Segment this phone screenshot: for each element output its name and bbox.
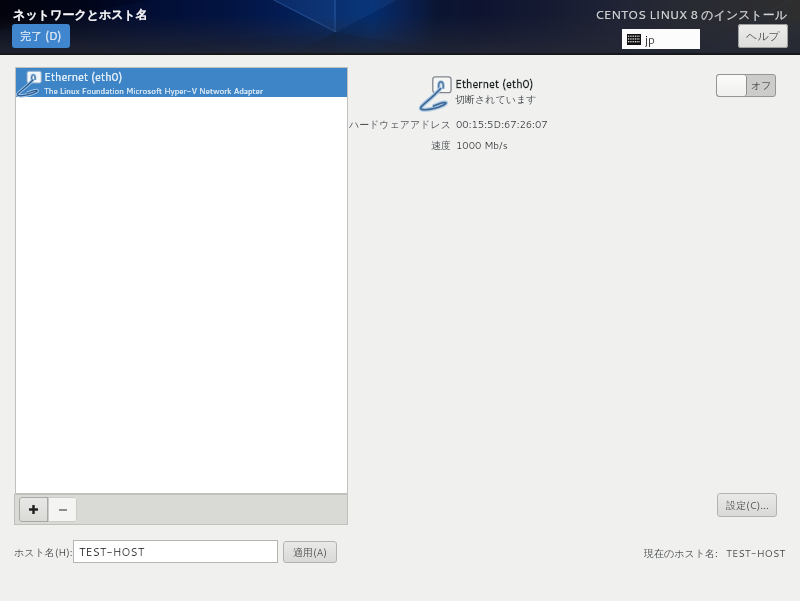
button[interactable]: jp <box>622 29 700 49</box>
button[interactable]: 適用(A) <box>283 541 337 563</box>
staticText: 適用(A) <box>293 545 327 559</box>
staticText: ヘルプ <box>746 29 780 43</box>
staticText: 00:15:5D:67:26:07 <box>456 117 548 131</box>
staticText: The Linux Foundation Microsoft Hyper-V N… <box>44 85 264 96</box>
button[interactable]: ヘルプ <box>738 24 788 48</box>
staticText: オフ <box>751 79 772 92</box>
button[interactable]: Ethernet (eth0) <box>15 68 348 97</box>
staticText: TEST-HOST <box>79 544 145 560</box>
staticText: 設定(C)... <box>726 498 769 512</box>
staticText: 完了 (D) <box>20 28 62 44</box>
staticText: ネットワークとホスト名 <box>13 7 148 22</box>
staticText: 1000 Mb/s <box>456 138 508 152</box>
staticText: jp <box>645 31 655 48</box>
button[interactable]: TEST-HOST <box>73 540 278 563</box>
staticText: CENTOS LINUX 8 のインストール <box>595 6 787 23</box>
button[interactable]: Remove device <box>48 497 77 522</box>
button[interactable]: Network connection toggle, off <box>716 74 776 97</box>
staticText: Ethernet (eth0) <box>44 69 123 85</box>
staticText: ハードウェアアドレス <box>348 118 451 131</box>
staticText: ホスト名(H): <box>14 545 73 559</box>
staticText: TEST-HOST <box>726 546 786 560</box>
button[interactable]: Add device <box>19 497 48 522</box>
staticText: 速度 <box>431 139 451 152</box>
button[interactable]: 完了 (D) <box>12 24 70 48</box>
staticText: 現在のホスト名: <box>644 546 718 560</box>
button[interactable]: 設定(C)... <box>717 493 777 517</box>
staticText: Ethernet (eth0) <box>455 76 534 92</box>
staticText: 切断されています <box>455 93 537 106</box>
